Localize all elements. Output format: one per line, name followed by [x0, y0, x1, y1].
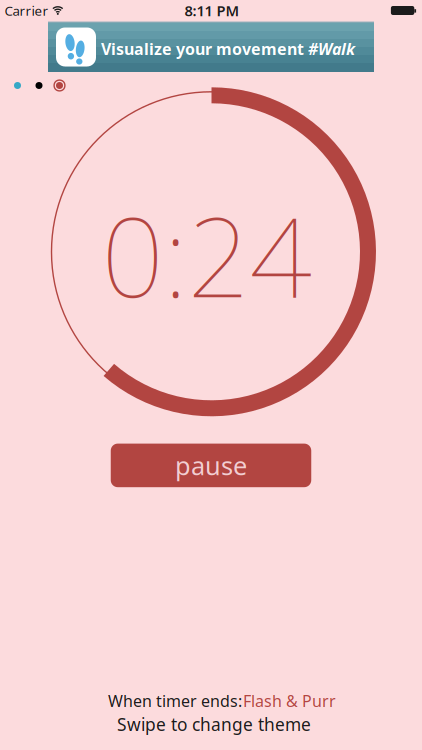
staticText: pause	[175, 449, 247, 482]
staticText: Swipe to change theme	[117, 713, 311, 736]
staticText: #Walk	[308, 38, 355, 59]
staticText: When timer ends:	[108, 690, 242, 711]
staticText: Visualize your movement	[101, 38, 304, 59]
staticText: Carrier	[4, 2, 48, 19]
button[interactable]: pause	[111, 444, 311, 487]
staticText: Flash & Purr	[243, 690, 336, 711]
staticText: 0:24	[101, 182, 311, 327]
staticText: 8:11 PM	[184, 1, 239, 20]
button[interactable]: Visualize your movement #Walk	[48, 22, 374, 72]
